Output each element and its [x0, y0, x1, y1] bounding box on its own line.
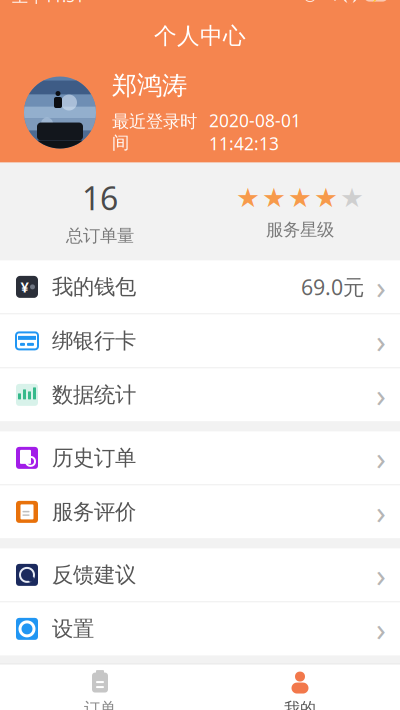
staticText: ★	[262, 183, 286, 213]
staticText: 郑鸿涛	[112, 70, 187, 101]
staticText: 我的	[284, 699, 316, 710]
button[interactable]: 服务评价	[0, 485, 400, 538]
staticText: ★	[340, 183, 364, 213]
staticText: 总订单量	[66, 225, 134, 246]
button[interactable]: 我的	[200, 665, 400, 710]
staticText: 服务评价	[52, 499, 136, 525]
staticText: ★	[314, 183, 338, 213]
staticText: 个人中心	[154, 22, 246, 50]
staticText: ›	[376, 491, 386, 533]
staticText: 我的钱包	[52, 274, 136, 300]
button[interactable]: 设置	[0, 602, 400, 655]
staticText: ›	[376, 374, 386, 416]
staticText: 历史订单	[52, 445, 136, 471]
staticText: ›	[376, 437, 386, 479]
staticText: ›	[376, 266, 386, 308]
staticText: ★	[236, 183, 260, 213]
staticText: ›	[376, 554, 386, 596]
staticText: 69.0元	[301, 273, 364, 301]
button[interactable]: 数据统计	[0, 368, 400, 421]
button[interactable]: 订单	[0, 665, 200, 710]
staticText: 反馈建议	[52, 562, 136, 588]
staticText: 最近登录时间	[112, 111, 197, 153]
staticText: ★	[288, 183, 312, 213]
staticText: 设置	[52, 616, 94, 642]
staticText: 2020-08-01 11:42:13	[209, 109, 301, 155]
staticText: 16	[82, 177, 118, 219]
staticText: 订单	[84, 699, 116, 710]
button[interactable]: 历史订单	[0, 431, 400, 485]
staticText: ⚡	[369, 0, 382, 2]
staticText: ›	[376, 320, 386, 362]
button[interactable]: ¥	[0, 260, 400, 314]
button[interactable]: 反馈建议	[0, 548, 400, 602]
staticText: 上午11:51	[12, 0, 84, 7]
staticText: 服务星级	[266, 219, 334, 240]
staticText: 绑银行卡	[52, 328, 136, 354]
staticText: ¥	[20, 277, 28, 297]
staticText: 数据统计	[52, 382, 136, 408]
staticText: ›	[376, 608, 386, 650]
button[interactable]: 绑银行卡	[0, 314, 400, 368]
